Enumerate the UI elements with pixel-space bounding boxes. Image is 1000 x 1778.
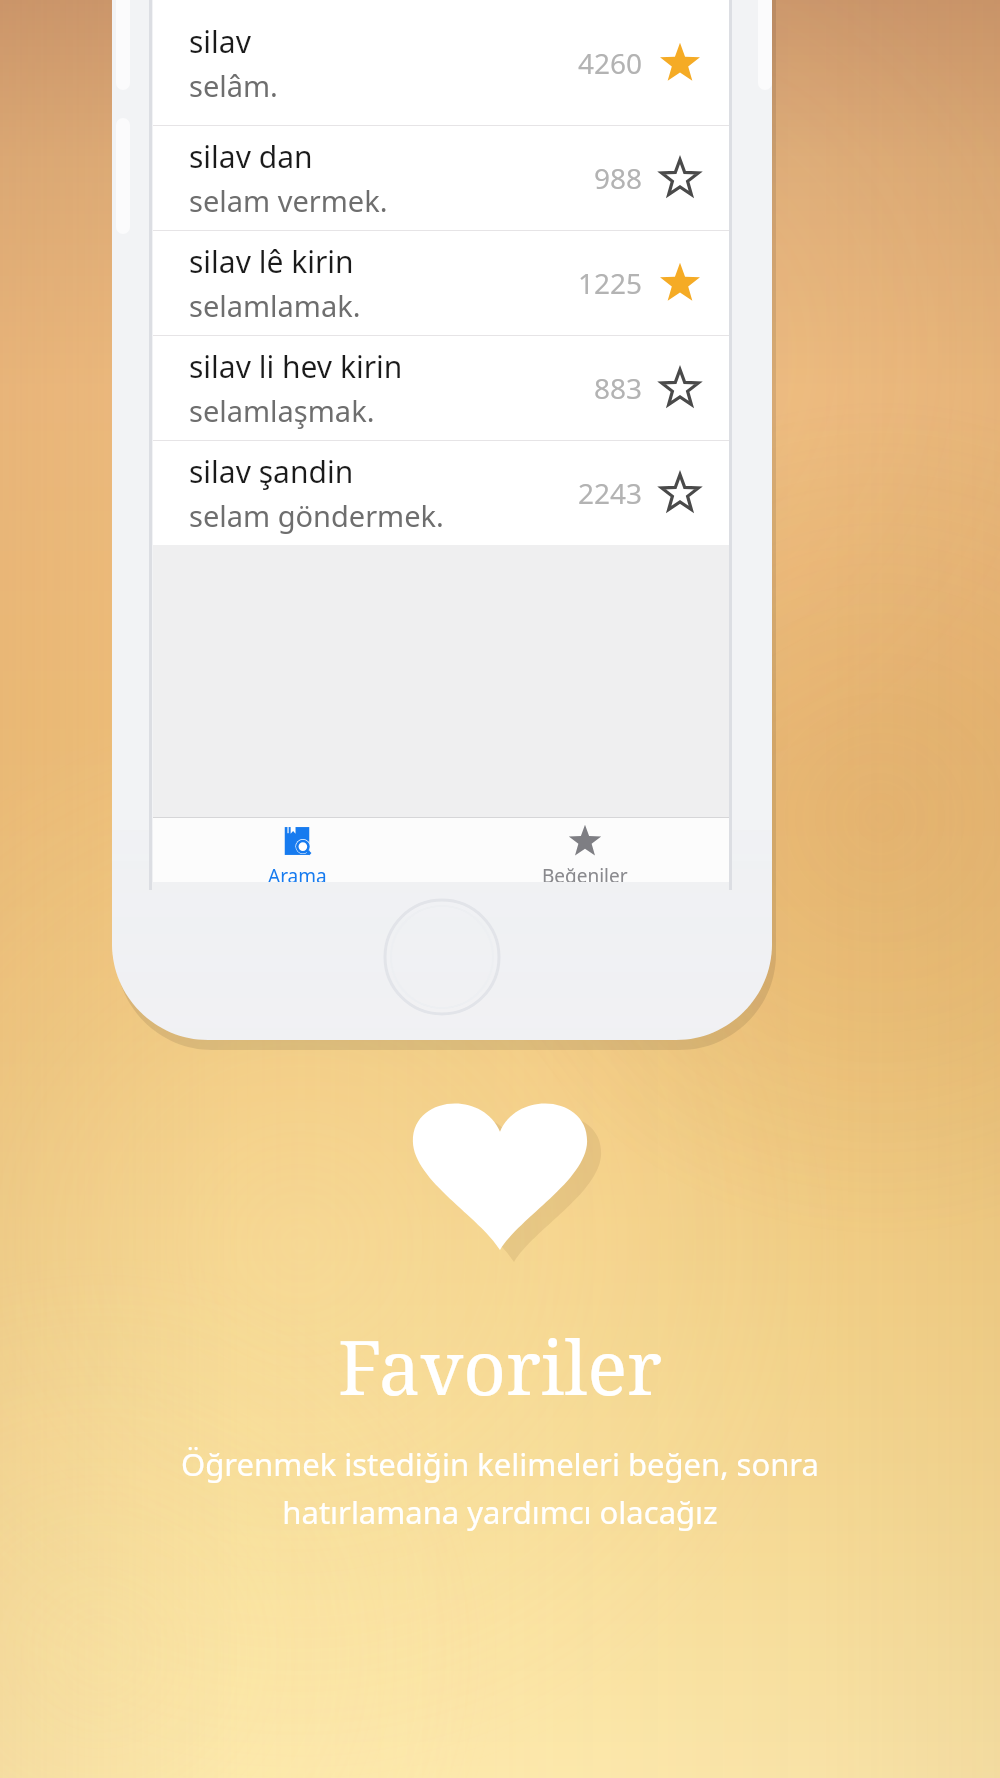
button[interactable]: silav dan xyxy=(153,126,729,230)
button[interactable]: Add to favorites xyxy=(657,470,703,516)
staticText: 988 xyxy=(594,159,643,197)
staticText: selamlaşmak. xyxy=(189,391,375,430)
staticText: Favoriler xyxy=(338,1316,662,1417)
staticText: silav xyxy=(189,21,251,62)
staticText: 2243 xyxy=(578,474,643,512)
staticText: 1225 xyxy=(578,264,643,302)
button[interactable]: silav lê kirin xyxy=(153,231,729,335)
button[interactable]: Arama xyxy=(153,818,441,882)
staticText: selam göndermek. xyxy=(189,496,444,535)
staticText: silav lê kirin xyxy=(189,241,354,282)
staticText: selam vermek. xyxy=(189,181,388,220)
button[interactable]: silav xyxy=(153,0,729,125)
staticText: 883 xyxy=(594,369,643,407)
button[interactable]: silav şandin xyxy=(153,441,729,545)
staticText: silav şandin xyxy=(189,451,354,492)
staticText: 4260 xyxy=(578,44,643,82)
button[interactable]: Favorite xyxy=(657,260,703,306)
staticText: Beğeniler xyxy=(542,863,628,882)
staticText: silav dan xyxy=(189,136,313,177)
staticText: hatırlamana yardımcı olacağız xyxy=(282,1491,718,1533)
staticText: selâm. xyxy=(189,66,278,105)
staticText: Arama xyxy=(268,863,327,882)
button[interactable]: Favorite xyxy=(657,40,703,86)
button[interactable]: Beğeniler xyxy=(441,818,729,882)
button[interactable]: Add to favorites xyxy=(657,365,703,411)
staticText: Öğrenmek istediğin kelimeleri beğen, son… xyxy=(181,1443,819,1485)
button[interactable]: silav li hev kirin xyxy=(153,336,729,440)
button[interactable]: Add to favorites xyxy=(657,155,703,201)
staticText: silav li hev kirin xyxy=(189,346,403,387)
staticText: selamlamak. xyxy=(189,286,361,325)
